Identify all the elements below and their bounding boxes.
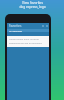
button[interactable]: Favorites [7, 23, 49, 29]
staticText: dog express_logo [19, 5, 46, 9]
staticText: Favorites [9, 24, 22, 28]
button[interactable]: Search [41, 24, 45, 28]
button[interactable]: All favorites [7, 29, 49, 32]
staticText: All favorites [9, 29, 23, 32]
staticText: adipiscing elit sed do eiusmod [9, 42, 42, 45]
staticText: View favorites [22, 1, 43, 5]
button[interactable]: More options [45, 24, 49, 28]
staticText: Lorem ipsum dolor sit amet consectetur [9, 38, 47, 41]
